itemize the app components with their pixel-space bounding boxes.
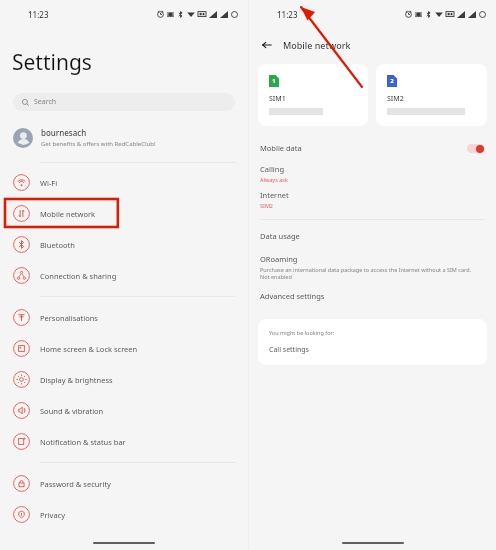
staticText: Purchase an international data package t…: [260, 266, 472, 273]
staticText: Settings: [12, 48, 92, 77]
staticText: You might be looking for:: [269, 329, 335, 336]
button[interactable]: 1: [258, 64, 368, 126]
staticText: Search: [34, 97, 57, 107]
button[interactable]: Advanced settings: [249, 291, 496, 301]
staticText: Internet: [260, 190, 289, 200]
button[interactable]: Search: [13, 93, 235, 111]
staticText: Mobile data: [260, 143, 302, 153]
staticText: Mobile network: [283, 39, 351, 51]
button[interactable]: ORoaming: [249, 254, 496, 280]
button[interactable]: Connection & sharing: [0, 260, 248, 291]
staticText: Mobile network: [40, 209, 96, 219]
staticText: Bluetooth: [40, 240, 75, 250]
button[interactable]: Back: [259, 37, 275, 53]
button[interactable]: Home screen & Lock screen: [0, 333, 248, 364]
staticText: Data usage: [260, 231, 300, 241]
button[interactable]: Password & security: [0, 468, 248, 499]
staticText: Always ask: [260, 176, 288, 183]
staticText: ORoaming: [260, 254, 298, 264]
button[interactable]: Mobile data: [249, 138, 496, 158]
staticText: Sound & vibration: [40, 406, 104, 416]
staticText: SIM1: [269, 94, 286, 104]
button[interactable]: Personalisations: [0, 302, 248, 333]
staticText: Privacy: [40, 510, 66, 520]
button[interactable]: Bluetooth: [0, 229, 248, 260]
button[interactable]: Sound & vibration: [0, 395, 248, 426]
staticText: Connection & sharing: [40, 271, 117, 281]
staticText: Not enabled: [260, 273, 292, 280]
button[interactable]: Mobile network: [0, 198, 248, 229]
staticText: Calling: [260, 164, 284, 174]
staticText: bournesach: [41, 127, 87, 138]
staticText: SIM2: [387, 94, 404, 104]
button[interactable]: Notification & status bar: [0, 426, 248, 457]
button[interactable]: 2: [376, 64, 487, 126]
staticText: 2: [390, 77, 394, 85]
staticText: Notification & status bar: [40, 437, 126, 447]
button[interactable]: Calling: [249, 164, 496, 183]
staticText: Advanced settings: [260, 291, 325, 301]
staticText: 11:23: [277, 9, 298, 20]
button[interactable]: bournesach: [0, 125, 248, 150]
staticText: Personalisations: [40, 313, 98, 323]
staticText: Password & security: [40, 479, 111, 489]
staticText: Wi-Fi: [40, 178, 58, 188]
button[interactable]: Privacy: [0, 499, 248, 530]
button[interactable]: Internet: [249, 190, 496, 209]
button[interactable]: You might be looking for:: [258, 319, 487, 365]
staticText: Get benefits & offers with RedCableClub!: [41, 140, 156, 148]
staticText: SIM2: [260, 202, 274, 209]
button[interactable]: Wi-Fi: [0, 167, 248, 198]
staticText: Call settings: [269, 345, 309, 355]
staticText: 1: [272, 77, 276, 85]
staticText: Home screen & Lock screen: [40, 344, 138, 354]
button[interactable]: Data usage: [249, 231, 496, 241]
staticText: Display & brightness: [40, 375, 113, 385]
button[interactable]: Display & brightness: [0, 364, 248, 395]
staticText: 11:23: [28, 9, 49, 20]
